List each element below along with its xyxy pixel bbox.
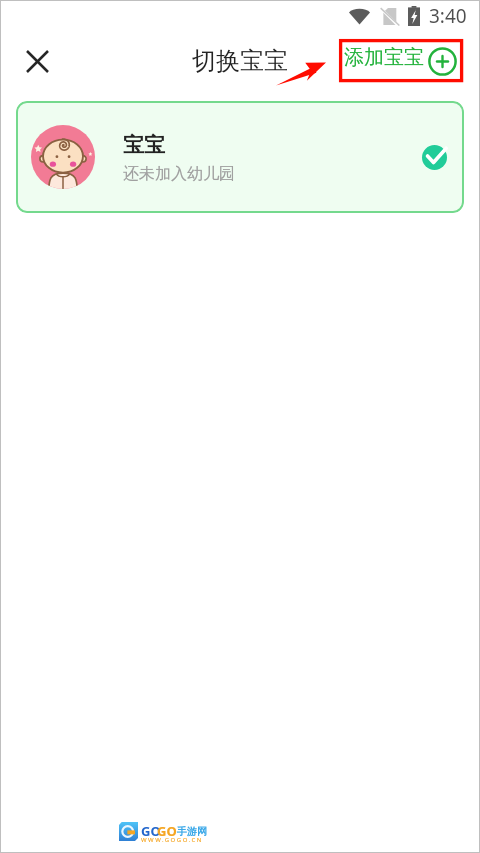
button[interactable]: Close — [19, 43, 56, 80]
staticText: 切换宝宝 — [192, 46, 288, 76]
staticText: 添加宝宝 — [344, 45, 424, 70]
staticText: 3:40 — [429, 3, 467, 29]
staticText: 还未加入幼儿园 — [123, 164, 235, 184]
staticText: WWW.GOGO.CN — [141, 836, 203, 844]
staticText: 宝宝 — [123, 132, 165, 158]
button[interactable]: 宝宝 — [16, 101, 464, 213]
staticText: GO — [141, 822, 161, 840]
staticText: GO — [157, 822, 177, 840]
staticText: 手游网 — [177, 825, 207, 838]
button[interactable]: 添加宝宝 — [339, 39, 463, 82]
